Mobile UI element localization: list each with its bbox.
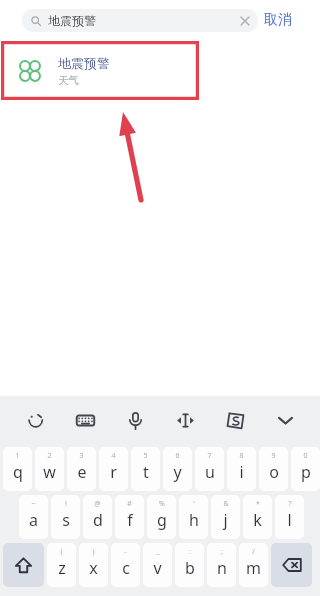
staticText: e xyxy=(77,461,87,483)
button[interactable]: Shift xyxy=(3,543,44,587)
staticText: 地震预警 xyxy=(48,13,96,28)
button[interactable]: Keyboard xyxy=(68,403,102,437)
button[interactable]: 9 xyxy=(259,447,288,491)
staticText: g xyxy=(157,509,167,531)
button[interactable]: % xyxy=(147,495,176,539)
staticText: : xyxy=(189,547,191,557)
button[interactable]: 4 xyxy=(99,447,128,491)
button[interactable]: ( xyxy=(47,543,76,587)
staticText: f xyxy=(127,509,133,531)
staticText: n xyxy=(217,557,227,579)
staticText: i xyxy=(239,461,244,483)
button[interactable]: 1 xyxy=(3,447,32,491)
staticText: 2 xyxy=(47,451,52,461)
button[interactable]: 7 xyxy=(195,447,224,491)
staticText: 3 xyxy=(79,451,84,461)
staticText: m xyxy=(246,557,261,579)
staticText: / xyxy=(252,547,255,557)
button[interactable]: # xyxy=(115,495,144,539)
staticText: _ xyxy=(156,547,160,557)
staticText: r xyxy=(110,461,117,483)
button[interactable]: ~ xyxy=(19,495,48,539)
button[interactable]: & xyxy=(211,495,240,539)
staticText: ' xyxy=(193,499,195,509)
button[interactable]: Sogou input xyxy=(218,403,252,437)
staticText: * xyxy=(256,499,260,509)
button[interactable]: Clear xyxy=(236,12,254,30)
staticText: ? xyxy=(288,499,292,509)
staticText: l xyxy=(287,509,292,531)
staticText: o xyxy=(269,461,279,483)
staticText: ; xyxy=(221,547,223,557)
staticText: 8 xyxy=(239,451,244,461)
staticText: y xyxy=(173,461,182,483)
button[interactable]: ; xyxy=(207,543,236,587)
staticText: d xyxy=(93,509,103,531)
button[interactable]: 地震预警 xyxy=(22,9,258,32)
staticText: ( xyxy=(60,547,63,557)
button[interactable]: 取消 xyxy=(264,5,314,35)
staticText: 0 xyxy=(303,451,308,461)
staticText: 6 xyxy=(175,451,180,461)
staticText: s xyxy=(62,509,70,531)
button[interactable]: Hide keyboard xyxy=(268,403,302,437)
staticText: u xyxy=(205,461,215,483)
staticText: % xyxy=(159,499,165,509)
staticText: h xyxy=(189,509,199,531)
staticText: & xyxy=(223,499,229,509)
staticText: - xyxy=(124,547,127,557)
button[interactable]: ) xyxy=(79,543,108,587)
staticText: 5 xyxy=(143,451,148,461)
staticText: # xyxy=(127,499,132,509)
button[interactable]: @ xyxy=(83,495,112,539)
staticText: z xyxy=(58,557,66,579)
staticText: j xyxy=(223,509,228,531)
staticText: @ xyxy=(94,499,101,509)
button[interactable]: 6 xyxy=(163,447,192,491)
button[interactable]: / xyxy=(239,543,268,587)
staticText: c xyxy=(122,557,130,579)
staticText: x xyxy=(89,557,98,579)
staticText: b xyxy=(185,557,195,579)
staticText: q xyxy=(13,461,23,483)
button[interactable]: - xyxy=(111,543,140,587)
button[interactable]: 地震预警 xyxy=(0,42,200,99)
button[interactable]: _ xyxy=(143,543,172,587)
button[interactable]: 3 xyxy=(67,447,96,491)
staticText: ~ xyxy=(31,499,36,509)
button[interactable]: 0 xyxy=(291,447,320,491)
button[interactable]: ' xyxy=(179,495,208,539)
staticText: 地震预警 xyxy=(58,55,110,71)
staticText: 1 xyxy=(15,451,20,461)
button[interactable]: 8 xyxy=(227,447,256,491)
button[interactable]: Backspace xyxy=(271,543,312,587)
staticText: ) xyxy=(92,547,95,557)
staticText: 4 xyxy=(111,451,116,461)
button[interactable]: 2 xyxy=(35,447,64,491)
staticText: w xyxy=(43,461,56,483)
staticText: a xyxy=(29,509,38,531)
staticText: 取消 xyxy=(264,11,292,29)
staticText: p xyxy=(301,461,311,483)
button[interactable]: Move cursor xyxy=(168,403,202,437)
button[interactable]: 5 xyxy=(131,447,160,491)
button[interactable]: ! xyxy=(51,495,80,539)
staticText: v xyxy=(153,557,162,579)
staticText: ! xyxy=(65,499,67,509)
button[interactable]: Emoji xyxy=(18,403,52,437)
button[interactable]: * xyxy=(243,495,272,539)
button[interactable]: : xyxy=(175,543,204,587)
staticText: k xyxy=(253,509,262,531)
staticText: 7 xyxy=(207,451,212,461)
button[interactable]: Voice input xyxy=(118,403,152,437)
staticText: 天气 xyxy=(58,74,79,87)
button[interactable]: ? xyxy=(275,495,304,539)
staticText: t xyxy=(143,461,149,483)
staticText: 9 xyxy=(271,451,276,461)
